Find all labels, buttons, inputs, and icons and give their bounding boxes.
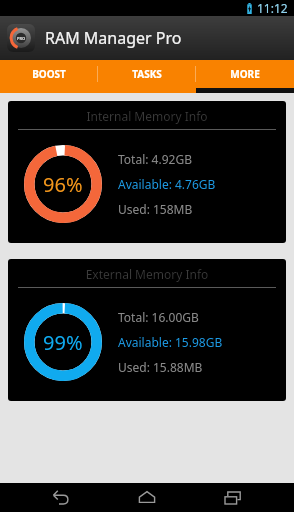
button[interactable]: External Memory Info <box>8 259 286 401</box>
button[interactable]: Internal Memory Info <box>8 101 286 243</box>
staticText: Internal Memory Info <box>8 108 286 124</box>
staticText: Total: 4.92GB <box>118 151 192 167</box>
button[interactable]: BOOST <box>0 60 98 88</box>
staticText: BOOST <box>32 67 66 81</box>
staticText: External Memory Info <box>8 266 286 282</box>
staticText: 11:12 <box>257 0 288 16</box>
staticText: TASKS <box>132 67 162 81</box>
staticText: Total: 16.00GB <box>118 309 199 325</box>
button[interactable]: Home <box>122 483 172 512</box>
button[interactable]: Recent apps <box>208 483 258 512</box>
staticText: 99% <box>43 329 83 356</box>
staticText: MORE <box>230 67 260 81</box>
staticText: RAM Manager Pro <box>45 27 182 49</box>
staticText: PRO <box>17 36 26 41</box>
staticText: Used: 15.88MB <box>118 359 203 375</box>
button[interactable]: TASKS <box>98 60 196 88</box>
staticText: Available: 15.98GB <box>118 334 223 350</box>
staticText: 96% <box>43 171 83 198</box>
button[interactable]: Back <box>36 483 86 512</box>
staticText: Used: 158MB <box>118 201 193 217</box>
staticText: Available: 4.76GB <box>118 176 216 192</box>
button[interactable]: MORE <box>196 60 294 88</box>
